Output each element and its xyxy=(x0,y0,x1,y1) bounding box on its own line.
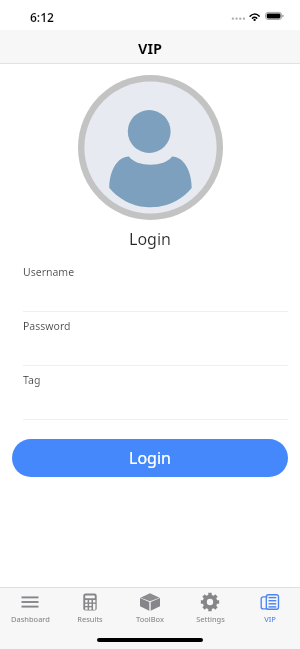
button[interactable]: Dashboard xyxy=(0,588,60,624)
staticText: Password xyxy=(23,319,71,333)
button[interactable]: ToolBox xyxy=(120,588,180,624)
button[interactable]: Login xyxy=(12,439,288,477)
staticText: ToolBox xyxy=(136,614,164,624)
staticText: Login xyxy=(129,447,171,469)
staticText: Dashboard xyxy=(11,614,50,624)
button[interactable]: Results xyxy=(60,588,120,624)
staticText: Username xyxy=(23,265,75,279)
button[interactable]: VIP xyxy=(240,588,300,624)
staticText: Login xyxy=(129,228,171,250)
staticText: Results xyxy=(77,614,103,624)
staticText: Tag xyxy=(23,373,41,387)
staticText: VIP xyxy=(264,614,276,624)
staticText: Settings xyxy=(196,614,225,624)
button[interactable]: Settings xyxy=(180,588,240,624)
staticText: VIP xyxy=(138,38,163,58)
staticText: 6:12 xyxy=(30,9,54,25)
